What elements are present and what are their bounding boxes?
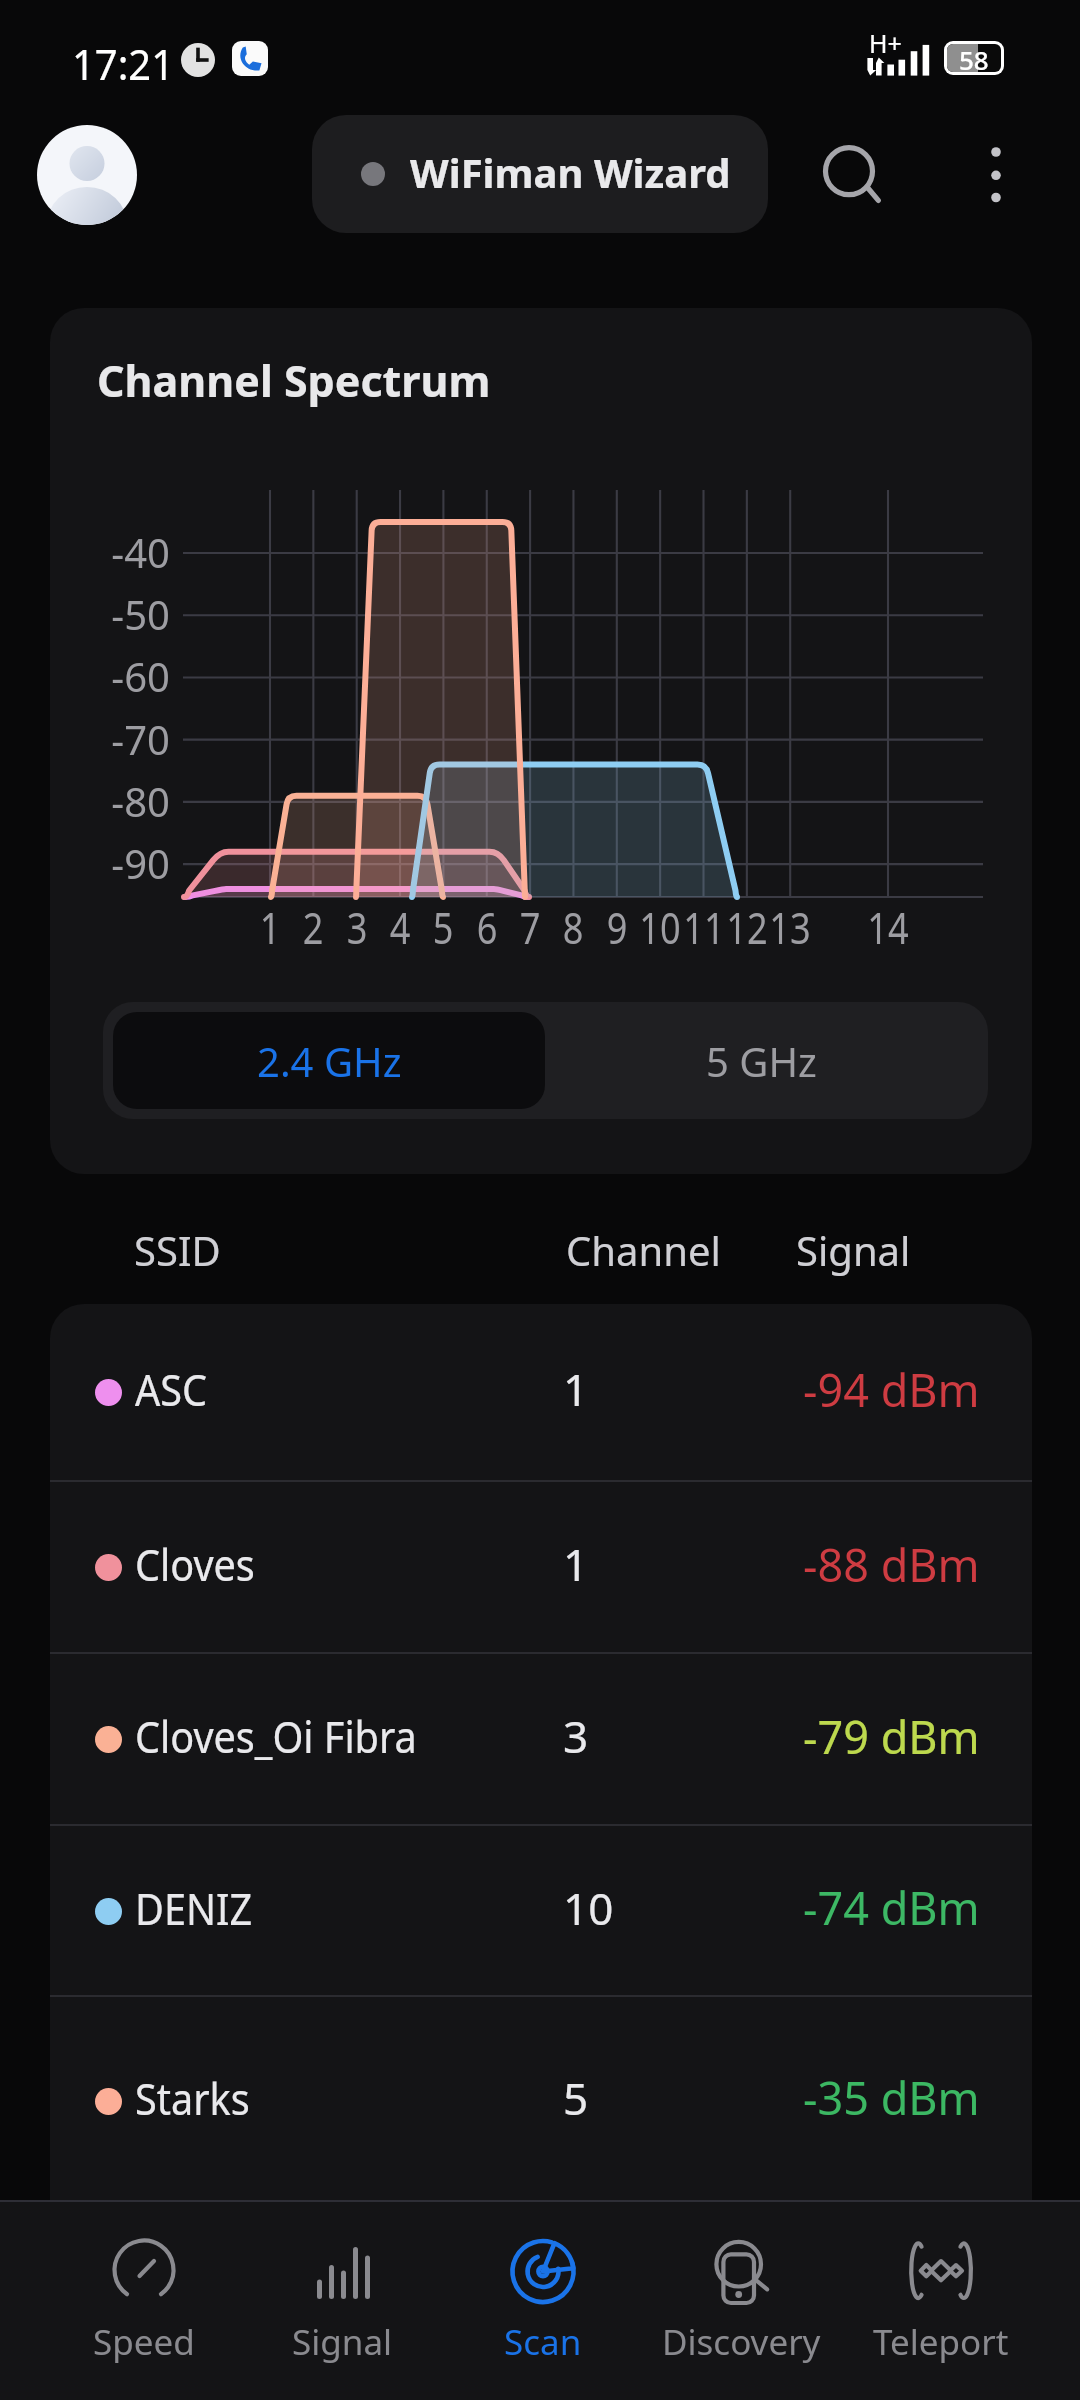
- staticText: -88 dBm: [803, 1534, 980, 1595]
- staticText: 17:21: [72, 35, 175, 92]
- button[interactable]: Cloves_Oi Fibra: [50, 1654, 1032, 1824]
- staticText: Scan: [504, 2318, 582, 2366]
- button[interactable]: Speed: [44, 2240, 243, 2366]
- staticText: Starks: [135, 2068, 250, 2128]
- staticText: 2.4 GHz: [257, 1034, 402, 1088]
- staticText: Signal: [796, 1223, 911, 1277]
- staticText: -50: [50, 587, 170, 641]
- button[interactable]: WiFiman Wizard: [312, 115, 768, 233]
- staticText: -74 dBm: [803, 1877, 980, 1938]
- staticText: Discovery: [662, 2318, 821, 2366]
- staticText: Teleport: [873, 2318, 1009, 2366]
- staticText: Channel: [566, 1223, 721, 1277]
- button[interactable]: Cloves: [50, 1482, 1032, 1652]
- staticText: Channel Spectrum: [97, 351, 491, 410]
- staticText: 11: [679, 898, 729, 957]
- button[interactable]: Scan: [443, 2240, 642, 2366]
- staticText: -40: [50, 525, 170, 579]
- staticText: 1: [563, 1534, 589, 1594]
- staticText: -70: [50, 712, 170, 766]
- staticText: -79 dBm: [803, 1706, 980, 1767]
- staticText: DENIZ: [135, 1878, 253, 1938]
- staticText: 8: [548, 898, 598, 957]
- staticText: ASC: [135, 1359, 208, 1419]
- staticText: Speed: [93, 2318, 195, 2366]
- staticText: 1: [245, 898, 295, 957]
- staticText: -35 dBm: [803, 2067, 980, 2128]
- button[interactable]: 5 GHz: [545, 1012, 978, 1109]
- staticText: 13: [765, 898, 815, 957]
- staticText: 12: [722, 898, 772, 957]
- staticText: 5: [563, 2068, 589, 2128]
- button[interactable]: Discovery: [642, 2240, 841, 2366]
- staticText: WiFiman Wizard: [410, 145, 731, 199]
- staticText: Signal: [292, 2318, 393, 2366]
- button[interactable]: DENIZ: [50, 1826, 1032, 1995]
- staticText: H+: [869, 26, 902, 60]
- staticText: 5: [418, 898, 468, 957]
- button[interactable]: Search: [809, 131, 891, 213]
- staticText: 14: [863, 898, 913, 957]
- staticText: 5 GHz: [706, 1034, 817, 1088]
- staticText: 6: [462, 898, 512, 957]
- button[interactable]: Starks: [50, 1997, 1032, 2204]
- staticText: Cloves_Oi Fibra: [135, 1706, 418, 1766]
- staticText: 1: [563, 1359, 589, 1419]
- staticText: -94 dBm: [803, 1359, 980, 1420]
- staticText: -80: [50, 774, 170, 828]
- button[interactable]: More options: [966, 131, 1026, 219]
- staticText: SSID: [134, 1223, 221, 1277]
- staticText: 10: [635, 898, 685, 957]
- staticText: 3: [332, 898, 382, 957]
- staticText: 3: [563, 1706, 589, 1766]
- staticText: 10: [563, 1878, 614, 1938]
- button[interactable]: Teleport: [841, 2240, 1040, 2366]
- staticText: 2: [288, 898, 338, 957]
- button[interactable]: Signal: [243, 2240, 442, 2366]
- staticText: 7: [505, 898, 555, 957]
- staticText: 9: [592, 898, 642, 957]
- staticText: -90: [50, 836, 170, 890]
- button[interactable]: ASC: [50, 1304, 1032, 1480]
- staticText: -60: [50, 649, 170, 703]
- button[interactable]: Profile: [37, 125, 137, 225]
- staticText: 58: [959, 44, 989, 70]
- button[interactable]: 2.4 GHz: [113, 1012, 545, 1109]
- staticText: Cloves: [135, 1534, 256, 1594]
- staticText: 4: [375, 898, 425, 957]
